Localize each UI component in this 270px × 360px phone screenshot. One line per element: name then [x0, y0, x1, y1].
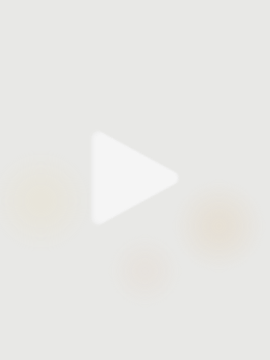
- button[interactable]: Play: [89, 124, 189, 232]
